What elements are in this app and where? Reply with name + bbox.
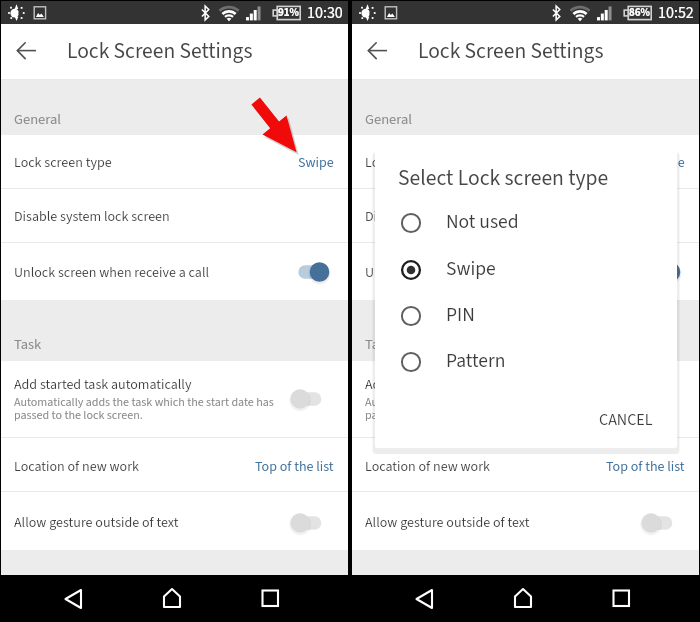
staticText: Pattern (446, 347, 506, 375)
staticText: Lock Screen Settings (67, 36, 253, 67)
staticText: 86% (629, 5, 651, 21)
button[interactable]: Recent apps (612, 589, 632, 609)
button[interactable]: Navigate up (10, 32, 42, 56)
button[interactable]: Location of new work (1, 438, 348, 491)
button[interactable]: Disable system lock screen (352, 189, 699, 242)
staticText: CANCEL (599, 409, 653, 432)
staticText: Not used (446, 208, 519, 236)
button[interactable]: Add started task automatically (1, 361, 348, 437)
staticText: Add started task automatically (365, 375, 543, 395)
button[interactable]: Lock screen type (1, 135, 348, 188)
button[interactable]: Unlock screen when receive a call (1, 243, 348, 300)
button[interactable]: Not used (375, 201, 677, 245)
button[interactable]: Unlock screen when receive a call (285, 259, 329, 285)
staticText: General (14, 109, 61, 130)
staticText: Allow gesture outside of text (14, 513, 179, 533)
button[interactable]: Allow gesture outside of text (285, 510, 329, 536)
staticText: Automatically adds the task which the st… (14, 394, 274, 424)
button[interactable]: Allow gesture outside of text (636, 510, 680, 536)
button[interactable]: Home (162, 587, 184, 609)
staticText: General (365, 109, 412, 130)
staticText: Task (14, 334, 42, 355)
staticText: Add started task automatically (14, 375, 192, 395)
staticText: Swipe (446, 255, 496, 283)
staticText: Lock screen type (365, 153, 463, 173)
button[interactable]: Back (64, 588, 86, 610)
staticText: Lock Screen Settings (418, 36, 604, 67)
button[interactable]: Add started task automatically (352, 361, 699, 437)
button[interactable]: Allow gesture outside of text (1, 492, 348, 550)
staticText: Location of new work (365, 457, 490, 477)
staticText: Allow gesture outside of text (365, 513, 530, 533)
staticText: Select Lock screen type (398, 163, 609, 194)
button[interactable]: PIN (375, 294, 677, 338)
button[interactable]: Add started task automatically (285, 386, 329, 412)
staticText: Location of new work (14, 457, 139, 477)
button[interactable]: Recent apps (261, 589, 281, 609)
staticText: Disable system lock screen (365, 207, 521, 227)
button[interactable]: CANCEL (591, 407, 661, 433)
button[interactable]: Allow gesture outside of text (352, 492, 699, 550)
staticText: 10:52 (658, 2, 694, 25)
button[interactable]: Disable system lock screen (1, 189, 348, 242)
staticText: Automatically adds the task which the st… (365, 394, 625, 424)
staticText: Disable system lock screen (14, 207, 170, 227)
button[interactable]: Swipe (375, 248, 677, 292)
staticText: PIN (446, 301, 475, 329)
staticText: Swipe (649, 153, 685, 173)
staticText: Lock screen type (14, 153, 112, 173)
staticText: Unlock screen when receive a call (14, 263, 210, 283)
button[interactable]: Unlock screen when receive a call (352, 243, 699, 300)
button[interactable]: Unlock screen when receive a call (636, 259, 680, 285)
staticText: Task (365, 334, 393, 355)
button[interactable]: Navigate up (361, 32, 393, 56)
staticText: 10:30 (307, 2, 343, 25)
button[interactable]: Home (513, 587, 535, 609)
button[interactable]: Add started task automatically (636, 386, 680, 412)
button[interactable]: Location of new work (352, 438, 699, 491)
staticText: 91% (278, 5, 300, 21)
staticText: Top of the list (606, 457, 685, 477)
staticText: Unlock screen when receive a call (365, 263, 561, 283)
staticText: Top of the list (255, 457, 334, 477)
button[interactable]: Back (415, 588, 437, 610)
button[interactable]: Lock screen type (352, 135, 699, 188)
staticText: Swipe (298, 153, 334, 173)
button[interactable]: Pattern (375, 340, 677, 384)
